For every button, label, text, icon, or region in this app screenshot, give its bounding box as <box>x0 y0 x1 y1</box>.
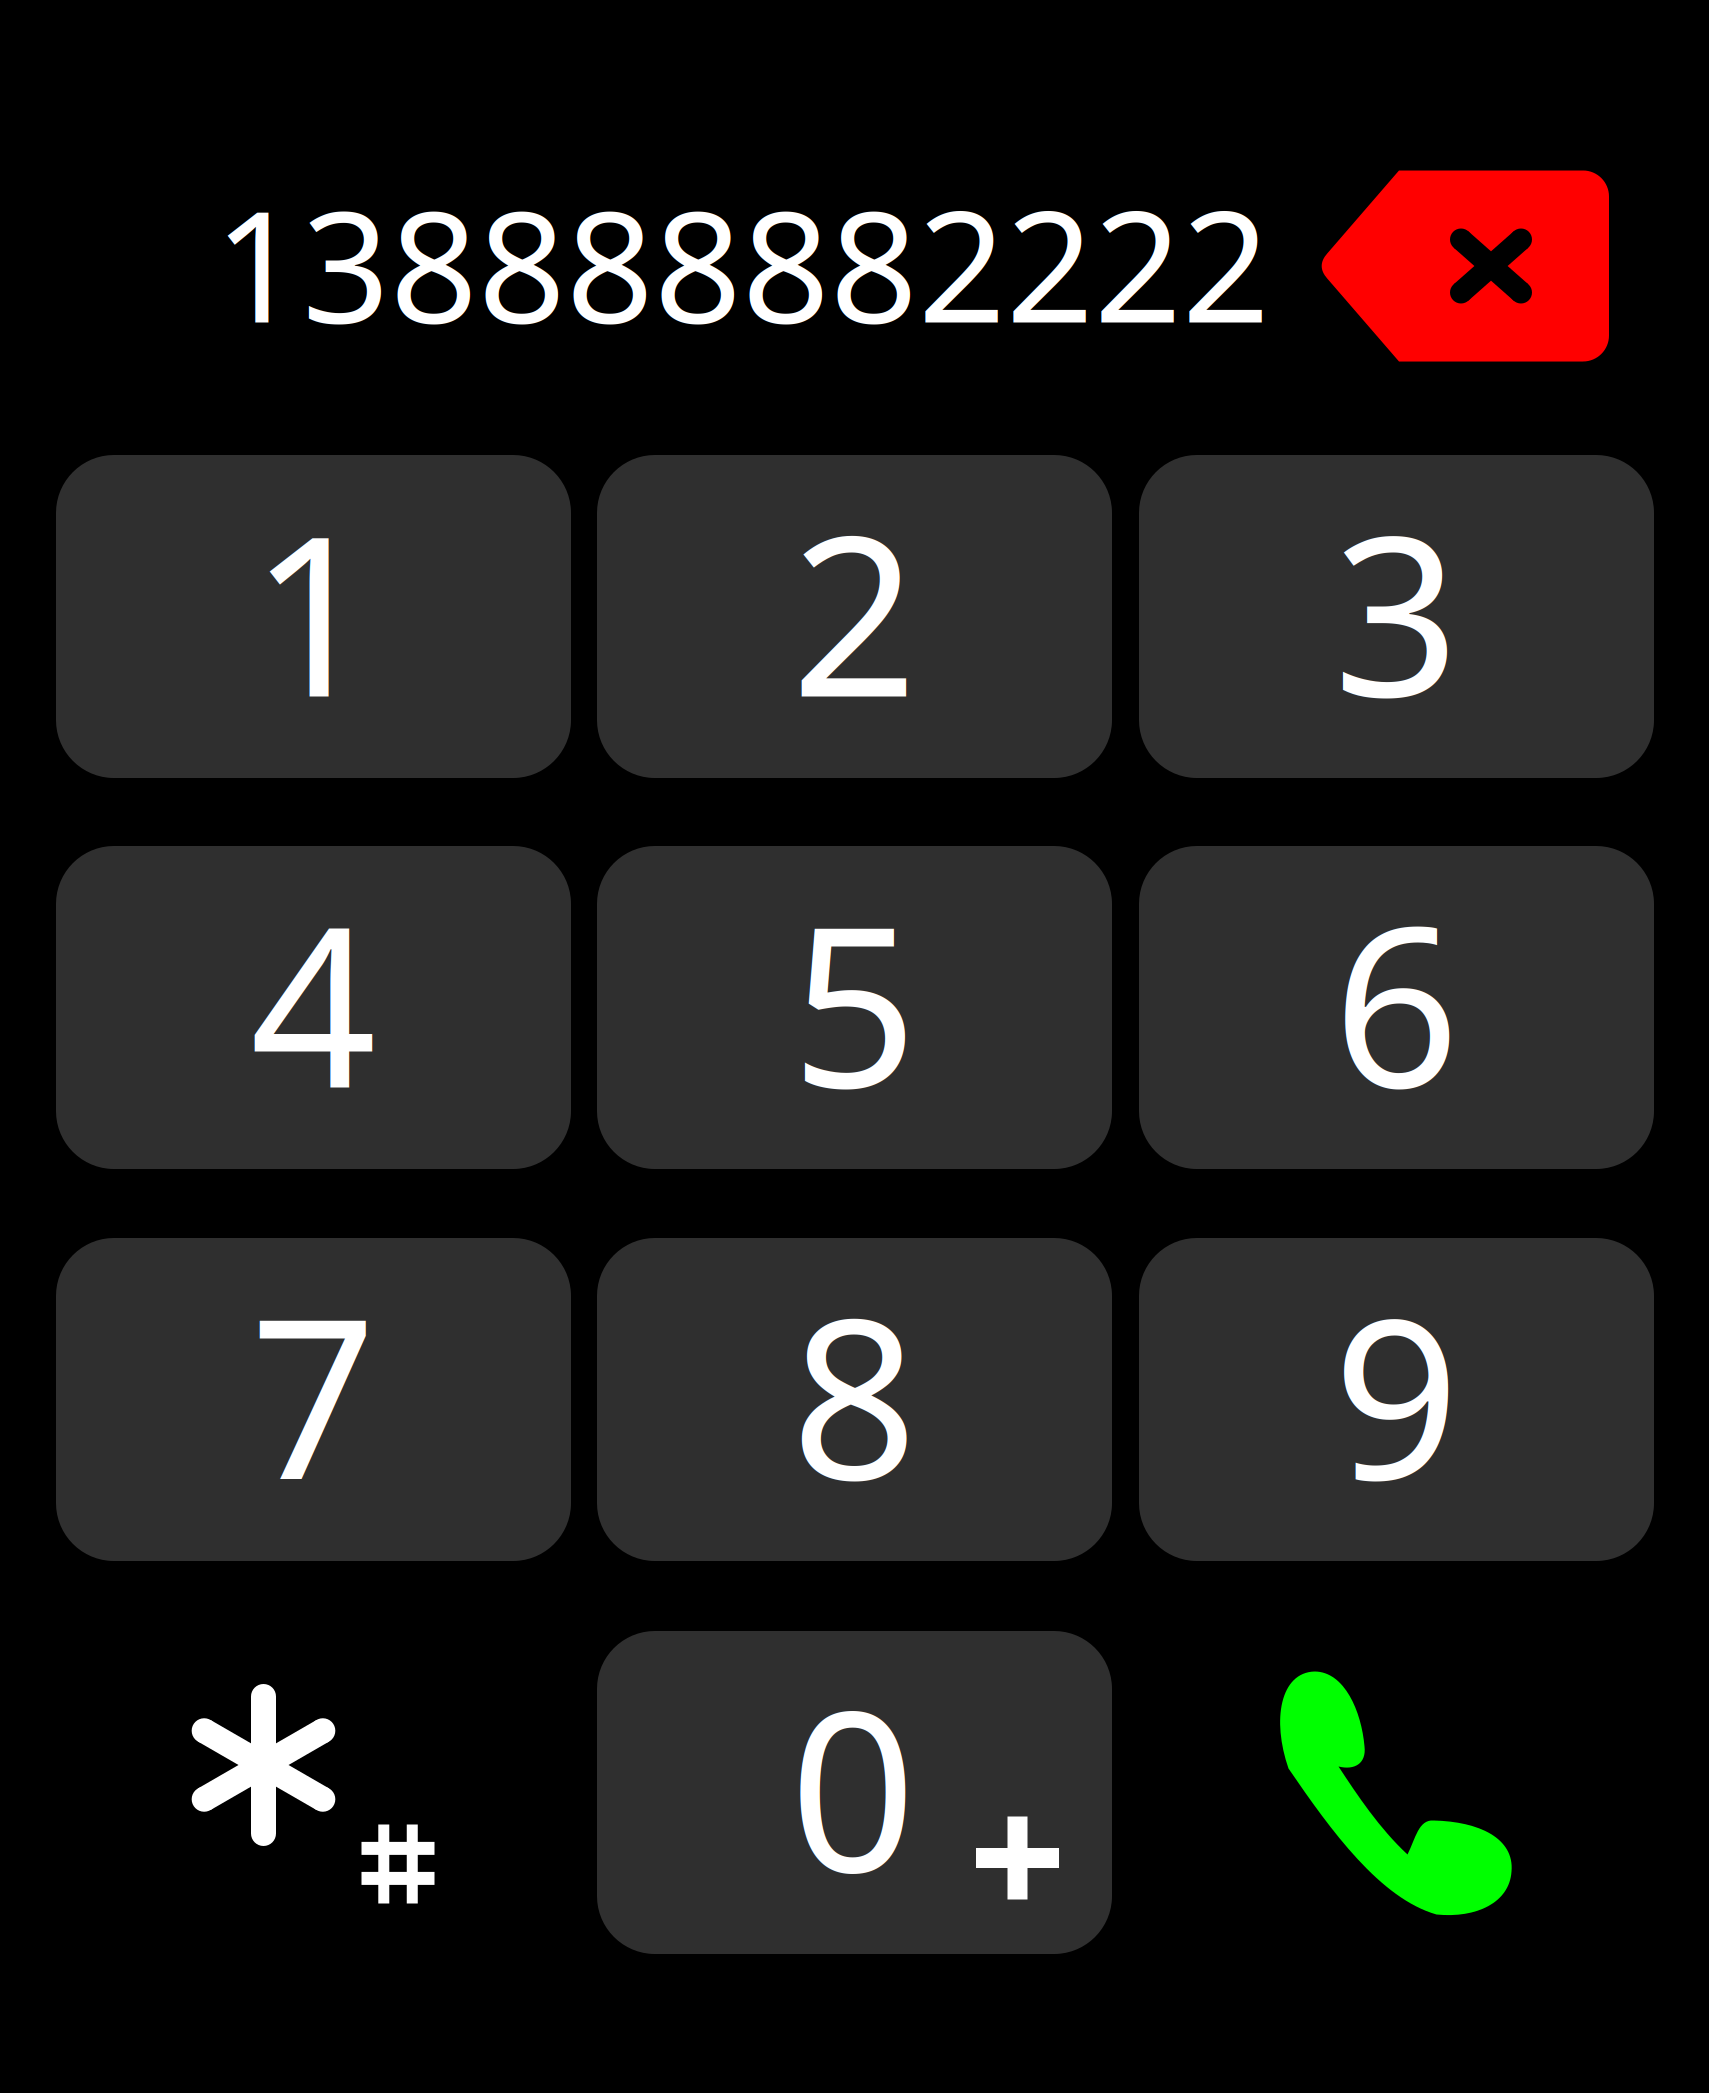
button[interactable]: 3 <box>1139 455 1654 778</box>
staticText: 9 <box>1333 1246 1460 1540</box>
button[interactable]: 5 <box>597 846 1112 1169</box>
staticText: 2 <box>791 463 918 757</box>
button[interactable]: 0 <box>597 1631 1112 1954</box>
button[interactable]: 4 <box>56 846 571 1169</box>
staticText: 7 <box>250 1246 377 1540</box>
staticText: 0 <box>789 1639 916 1933</box>
staticText: 3 <box>1333 463 1460 757</box>
button[interactable]: Call <box>1139 1631 1654 1954</box>
staticText: 138888882222 <box>214 161 1270 365</box>
button[interactable]: 2 <box>597 455 1112 778</box>
staticText: 8 <box>791 1246 918 1540</box>
staticText: 5 <box>791 854 918 1148</box>
button[interactable]: 9 <box>1139 1238 1654 1561</box>
button[interactable]: Delete <box>1321 170 1609 361</box>
button[interactable]: 1 <box>56 455 571 778</box>
button[interactable]: 7 <box>56 1238 571 1561</box>
staticText: 1 <box>250 463 377 757</box>
button[interactable]: Star, hash <box>56 1631 571 1954</box>
button[interactable]: 8 <box>597 1238 1112 1561</box>
staticText: 6 <box>1333 854 1460 1148</box>
button[interactable]: 6 <box>1139 846 1654 1169</box>
staticText: 4 <box>250 854 377 1148</box>
